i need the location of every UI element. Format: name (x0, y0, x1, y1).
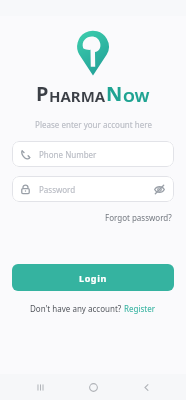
staticText: P (36, 80, 49, 107)
staticText: Please enter your account here (35, 119, 152, 130)
button[interactable]: Home (80, 374, 106, 400)
button[interactable]: Login (12, 264, 174, 291)
staticText: Phone Number (39, 149, 166, 160)
button[interactable]: Phone Number (12, 141, 174, 167)
staticText: OW (123, 86, 150, 106)
staticText: N (106, 80, 123, 107)
staticText: HARMA (49, 86, 106, 106)
staticText: Don't have any account? (30, 303, 124, 314)
button[interactable]: Toggle password visibility (152, 182, 166, 196)
staticText: Login (79, 272, 107, 284)
button[interactable]: Forgot password? (103, 210, 174, 225)
staticText: Password (39, 184, 152, 195)
staticText: Forgot password? (105, 212, 172, 223)
staticText: Register (124, 303, 156, 314)
button[interactable]: Back (133, 374, 159, 400)
button[interactable]: Recents (27, 374, 53, 400)
button[interactable]: Password (12, 176, 174, 202)
button[interactable]: Don't have any account? (27, 301, 159, 316)
